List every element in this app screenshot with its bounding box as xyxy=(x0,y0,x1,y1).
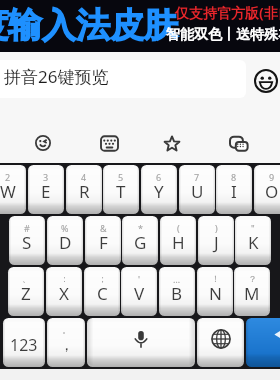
staticText: 2 xyxy=(5,171,11,183)
staticText: C xyxy=(97,282,108,305)
staticText: O xyxy=(265,180,279,203)
staticText: Z xyxy=(21,282,31,305)
staticText: D xyxy=(59,231,72,254)
staticText: V xyxy=(134,282,145,305)
button[interactable]: 3 xyxy=(28,165,64,214)
button[interactable]: ' xyxy=(121,267,157,316)
staticText: 5 xyxy=(118,171,124,183)
button[interactable]: 、 xyxy=(8,267,44,316)
button[interactable]: 123 xyxy=(3,318,45,367)
button[interactable]: ( xyxy=(160,216,196,265)
button[interactable] xyxy=(87,318,195,367)
staticText: 度输入法皮肤 xyxy=(0,4,178,47)
button[interactable]: " xyxy=(235,216,271,265)
button[interactable]: ： xyxy=(46,267,82,316)
staticText: ' xyxy=(138,273,141,285)
button[interactable]: ； xyxy=(84,267,120,316)
staticText: S xyxy=(22,231,32,254)
staticText: ； xyxy=(98,273,107,284)
button[interactable]: % xyxy=(47,216,83,265)
staticText: 7 xyxy=(194,171,200,183)
button[interactable]: Emoji xyxy=(254,68,280,94)
staticText: 9 xyxy=(269,171,275,183)
staticText: J xyxy=(214,231,219,254)
staticText: 3 xyxy=(43,171,49,183)
staticText: F xyxy=(99,231,108,254)
staticText: G xyxy=(134,231,147,254)
staticText: ( xyxy=(177,222,180,234)
staticText: ) xyxy=(215,222,218,234)
button[interactable]: 7 xyxy=(179,165,215,214)
staticText: I xyxy=(231,180,237,203)
button[interactable]: ) xyxy=(198,216,234,265)
button[interactable]: * xyxy=(122,216,158,265)
staticText: E xyxy=(41,180,51,203)
staticText: 智能双色丨送特殊布 xyxy=(166,26,280,44)
staticText: U xyxy=(191,180,204,203)
staticText: X xyxy=(59,282,69,305)
button[interactable]: 6 xyxy=(141,165,177,214)
staticText: 8 xyxy=(231,171,237,183)
button[interactable]: 5 xyxy=(103,165,139,214)
staticText: ： xyxy=(60,273,69,284)
button[interactable]: … xyxy=(159,267,195,316)
staticText: # xyxy=(24,222,30,234)
staticText: W xyxy=(0,180,16,203)
staticText: ？ xyxy=(248,273,257,284)
button[interactable]: 4 xyxy=(66,165,102,214)
button[interactable] xyxy=(0,60,246,98)
staticText: " xyxy=(251,222,255,234)
button[interactable]: 9 xyxy=(254,165,280,214)
button[interactable]: Floating keyboard xyxy=(221,126,255,160)
staticText: N xyxy=(209,282,222,305)
staticText: H xyxy=(172,231,185,254)
button[interactable] xyxy=(197,318,244,367)
staticText: M xyxy=(244,282,260,305)
staticText: 。 xyxy=(62,324,71,335)
staticText: R xyxy=(79,180,90,203)
button[interactable]: ！ xyxy=(197,267,233,316)
staticText: 4 xyxy=(81,171,87,183)
button[interactable]: 8 xyxy=(216,165,252,214)
staticText: K xyxy=(248,231,259,254)
button[interactable]: # xyxy=(9,216,45,265)
staticText: ， xyxy=(59,336,74,355)
staticText: 拼音26键预览 xyxy=(4,65,109,88)
staticText: 、 xyxy=(22,273,31,284)
staticText: 6 xyxy=(156,171,162,183)
button[interactable]: Emoticon xyxy=(26,126,60,160)
button[interactable]: ？ xyxy=(234,267,270,316)
button[interactable]: 。 xyxy=(47,318,85,367)
button[interactable]: Keyboard layout xyxy=(92,126,126,160)
staticText: Y xyxy=(154,180,164,203)
staticText: T xyxy=(116,180,126,203)
button[interactable] xyxy=(246,318,280,367)
button[interactable]: & xyxy=(85,216,121,265)
staticText: ！ xyxy=(211,273,220,284)
button[interactable]: 2 xyxy=(0,165,26,214)
button[interactable]: Favourites xyxy=(155,126,189,160)
staticText: % xyxy=(61,222,69,234)
staticText: 仅支持官方版(非自带 xyxy=(175,3,280,22)
staticText: … xyxy=(173,273,181,285)
staticText: B xyxy=(171,282,183,305)
staticText: 123 xyxy=(10,334,38,356)
staticText: & xyxy=(100,222,107,234)
staticText: * xyxy=(138,222,143,234)
